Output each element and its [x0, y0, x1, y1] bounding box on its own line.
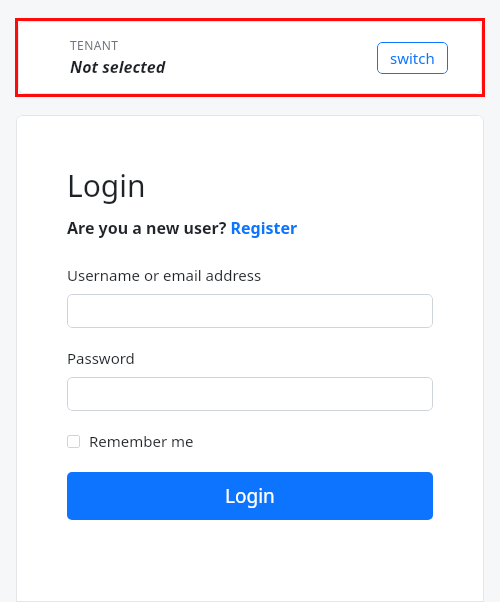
- staticText: Login: [225, 483, 275, 509]
- button[interactable]: Remember me: [67, 431, 194, 451]
- staticText: switch: [390, 48, 435, 68]
- button[interactable]: Text input field: [67, 377, 433, 411]
- button[interactable]: Text input field: [67, 294, 433, 328]
- staticText: TENANT: [70, 37, 119, 53]
- staticText: Remember me: [89, 431, 194, 451]
- staticText: Not selected: [70, 56, 166, 78]
- staticText: Password: [67, 348, 135, 368]
- button[interactable]: Are you a new user? Register: [67, 217, 298, 239]
- button[interactable]: Login: [67, 472, 433, 520]
- staticText: Username or email address: [67, 265, 262, 285]
- button[interactable]: switch: [377, 42, 448, 74]
- staticText: Login: [67, 165, 146, 206]
